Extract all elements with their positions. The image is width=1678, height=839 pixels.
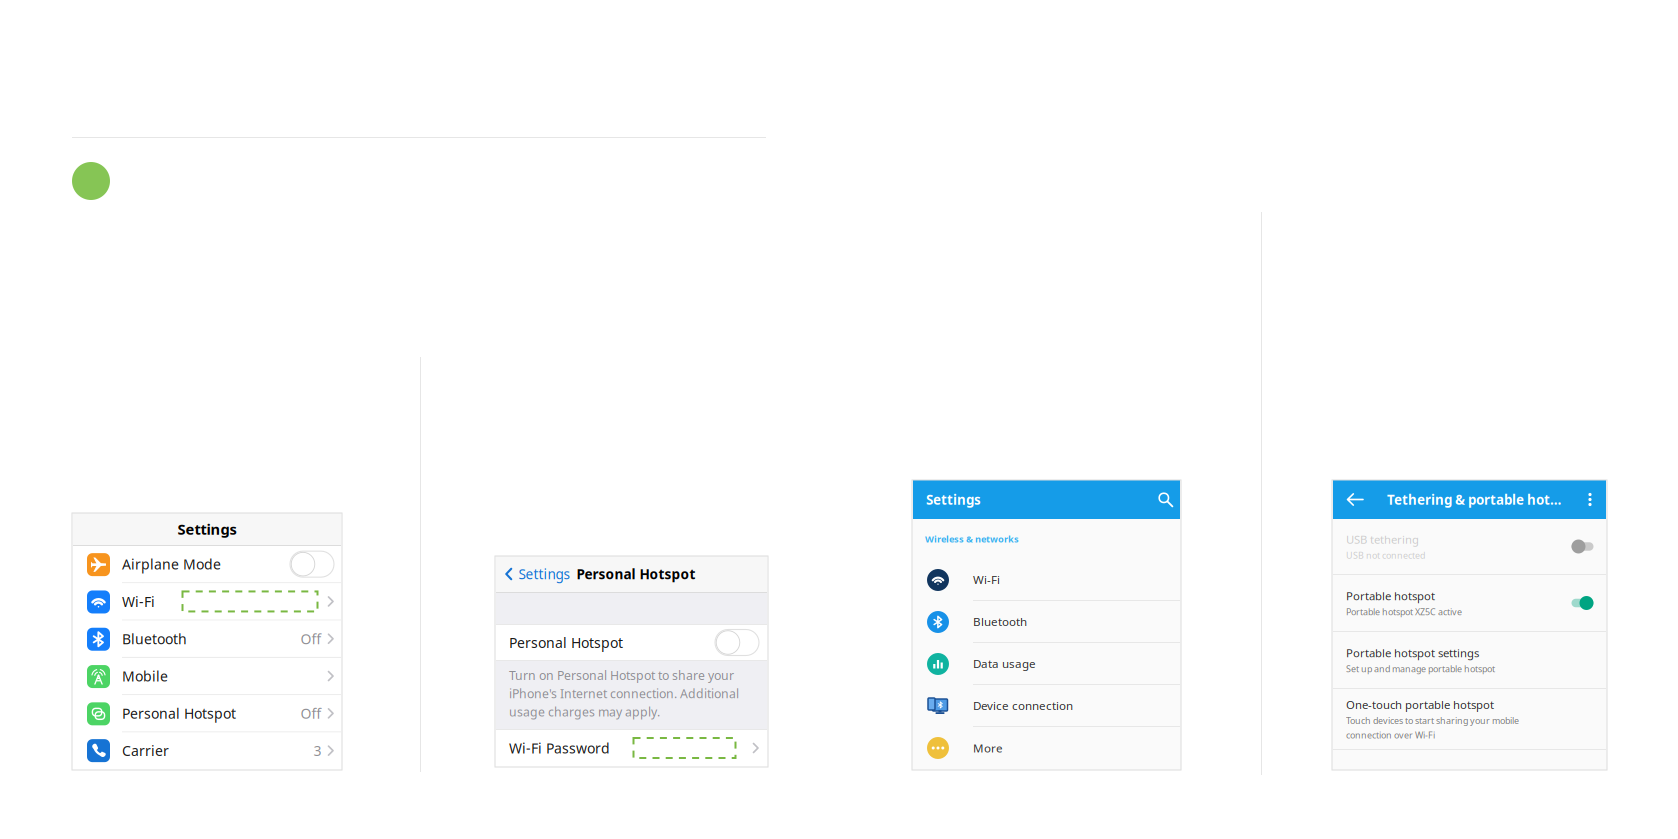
staticText: Portable hotspot XZ5C active [1346, 606, 1462, 618]
staticText: Bluetooth [973, 614, 1027, 629]
button[interactable]: Airplane Mode [73, 546, 341, 583]
staticText: Airplane Mode [122, 555, 221, 573]
staticText: Wi-Fi [122, 592, 155, 611]
staticText: Wireless & networks [925, 533, 1019, 545]
button[interactable]: More [913, 727, 1180, 769]
button[interactable]: USB tethering [1333, 519, 1606, 574]
button[interactable]: One-touch portable hotspot [1333, 689, 1606, 749]
button[interactable]: Data usage [913, 643, 1180, 685]
staticText: Personal Hotspot [576, 565, 695, 583]
button[interactable]: Back [1341, 480, 1369, 519]
staticText: Mobile [122, 667, 168, 685]
button[interactable]: Carrier [73, 732, 341, 769]
staticText: Personal Hotspot [122, 704, 236, 723]
staticText: Portable hotspot [1346, 588, 1435, 603]
staticText: Tethering & portable hot… [1387, 491, 1561, 508]
staticText: One-touch portable hotspot [1346, 697, 1494, 712]
button[interactable]: Device connection [913, 685, 1180, 727]
staticText: Settings [518, 565, 570, 583]
button[interactable]: More options [1579, 480, 1601, 519]
button[interactable]: Wi-Fi [913, 559, 1180, 601]
staticText: Settings [926, 491, 981, 508]
staticText: 3 [313, 741, 321, 760]
staticText: Portable hotspot settings [1346, 645, 1479, 660]
staticText: Off [300, 629, 321, 648]
staticText: Turn on Personal Hotspot to share your [509, 667, 734, 683]
staticText: Personal Hotspot [509, 633, 623, 652]
staticText: Carrier [122, 741, 169, 760]
staticText: Settings [177, 519, 236, 539]
button[interactable]: Wi-Fi [73, 583, 341, 621]
staticText: USB tethering [1346, 532, 1419, 547]
button[interactable]: Search [1155, 480, 1176, 519]
button[interactable]: Bluetooth [913, 601, 1180, 643]
staticText: Device connection [973, 698, 1073, 713]
staticText: connection over Wi-Fi [1346, 729, 1435, 741]
staticText: Wi-Fi Password [509, 739, 610, 757]
staticText: Off [300, 704, 321, 723]
staticText: Wi-Fi [973, 572, 1000, 587]
button[interactable]: Mobile [73, 658, 341, 695]
button[interactable]: Portable hotspot [1333, 575, 1606, 631]
staticText: USB not connected [1346, 549, 1425, 561]
staticText: Bluetooth [122, 629, 187, 648]
staticText: Touch devices to start sharing your mobi… [1346, 715, 1519, 727]
button[interactable]: Personal Hotspot [73, 695, 341, 732]
button[interactable]: Wi-Fi Password [496, 730, 767, 766]
button[interactable]: Settings [496, 556, 767, 592]
staticText: Data usage [973, 656, 1036, 671]
staticText: usage charges may apply. [509, 704, 660, 720]
staticText: iPhone's Internet connection. Additional [509, 685, 739, 702]
staticText: Set up and manage portable hotspot [1346, 663, 1495, 675]
staticText: More [973, 740, 1003, 756]
button[interactable]: Bluetooth [73, 621, 341, 658]
button[interactable]: Portable hotspot settings [1333, 632, 1606, 688]
button[interactable]: Personal Hotspot [496, 625, 767, 660]
